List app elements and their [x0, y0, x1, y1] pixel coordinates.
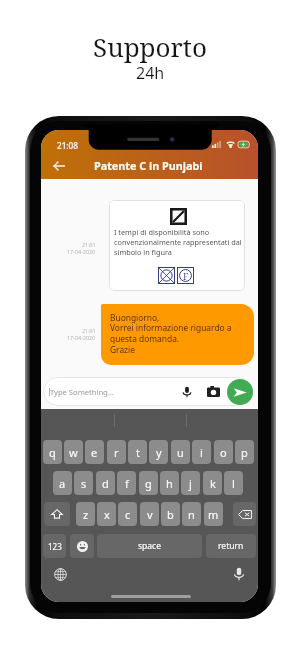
button[interactable]: I tempi di disponibilità sono convenzion…: [109, 200, 245, 291]
button[interactable]: v: [140, 502, 159, 526]
staticText: v: [147, 507, 153, 522]
button[interactable]: Backspace: [233, 502, 256, 526]
staticText: s: [81, 476, 87, 491]
button[interactable]: Emoji: [70, 534, 94, 558]
button[interactable]: f: [117, 471, 136, 495]
button[interactable]: k: [203, 471, 222, 495]
staticText: q: [49, 445, 56, 460]
button[interactable]: j: [181, 471, 200, 495]
button[interactable]: Type Something...: [43, 377, 193, 406]
staticText: Type Something...: [50, 387, 114, 397]
staticText: u: [177, 445, 184, 460]
staticText: m: [208, 507, 219, 522]
button[interactable]: e: [85, 440, 104, 464]
button[interactable]: u: [171, 440, 190, 464]
staticText: 21:08: [57, 140, 78, 151]
staticText: e: [91, 445, 98, 460]
button[interactable]: Buongiorno, Vorrei informazione riguardo…: [101, 304, 254, 365]
button[interactable]: r: [107, 440, 126, 464]
button[interactable]: b: [161, 502, 180, 526]
button[interactable]: p: [235, 440, 254, 464]
button[interactable]: l: [224, 471, 243, 495]
staticText: h: [166, 476, 173, 491]
staticText: I tempi di disponibilità sono convenzion…: [114, 227, 242, 257]
button[interactable]: Space: [97, 534, 202, 558]
staticText: Patente C in Punjabi: [94, 158, 203, 173]
staticText: j: [189, 476, 192, 491]
staticText: p: [241, 445, 248, 460]
staticText: a: [59, 476, 66, 491]
staticText: 17-04-2020: [67, 248, 96, 255]
button[interactable]: i: [192, 440, 211, 464]
staticText: return: [218, 540, 244, 552]
staticText: n: [188, 507, 195, 522]
staticText: g: [145, 476, 152, 491]
staticText: o: [220, 445, 227, 460]
staticText: x: [104, 507, 110, 522]
button[interactable]: a: [53, 471, 72, 495]
button[interactable]: c: [118, 502, 137, 526]
button[interactable]: z: [76, 502, 95, 526]
button[interactable]: o: [214, 440, 233, 464]
staticText: z: [83, 507, 89, 522]
staticText: y: [156, 445, 162, 460]
staticText: Supporto: [93, 29, 207, 64]
staticText: i: [200, 445, 203, 460]
button[interactable]: Camera: [202, 380, 225, 403]
button[interactable]: d: [96, 471, 115, 495]
button[interactable]: Shift: [44, 502, 70, 526]
button[interactable]: s: [74, 471, 93, 495]
button[interactable]: h: [160, 471, 179, 495]
staticText: 24h: [136, 62, 165, 84]
staticText: b: [167, 507, 174, 522]
button[interactable]: n: [182, 502, 201, 526]
button[interactable]: x: [97, 502, 116, 526]
staticText: 17-04-2020: [67, 334, 96, 341]
staticText: Buongiorno, Vorrei informazione riguardo…: [110, 312, 232, 356]
button[interactable]: Change keyboard: [49, 563, 71, 585]
button[interactable]: m: [204, 502, 223, 526]
staticText: l: [232, 476, 235, 491]
staticText: space: [138, 540, 161, 552]
staticText: F: [183, 270, 189, 282]
button[interactable]: t: [128, 440, 147, 464]
button[interactable]: Numbers: [43, 534, 66, 558]
button[interactable]: q: [43, 440, 62, 464]
staticText: c: [125, 507, 131, 522]
staticText: 21:01: [82, 327, 96, 334]
button[interactable]: g: [139, 471, 158, 495]
button[interactable]: Dictation: [228, 563, 250, 585]
staticText: 21:01: [82, 241, 96, 248]
staticText: w: [69, 445, 78, 460]
button[interactable]: Return: [206, 534, 256, 558]
button[interactable]: Back: [47, 154, 71, 178]
staticText: 123: [48, 541, 62, 552]
staticText: t: [136, 445, 140, 460]
button[interactable]: Voice message: [175, 380, 198, 403]
staticText: d: [102, 476, 109, 491]
staticText: f: [125, 476, 129, 491]
button[interactable]: Send: [227, 379, 253, 405]
staticText: r: [114, 445, 119, 460]
button[interactable]: w: [64, 440, 83, 464]
button[interactable]: y: [149, 440, 168, 464]
staticText: k: [210, 476, 216, 491]
